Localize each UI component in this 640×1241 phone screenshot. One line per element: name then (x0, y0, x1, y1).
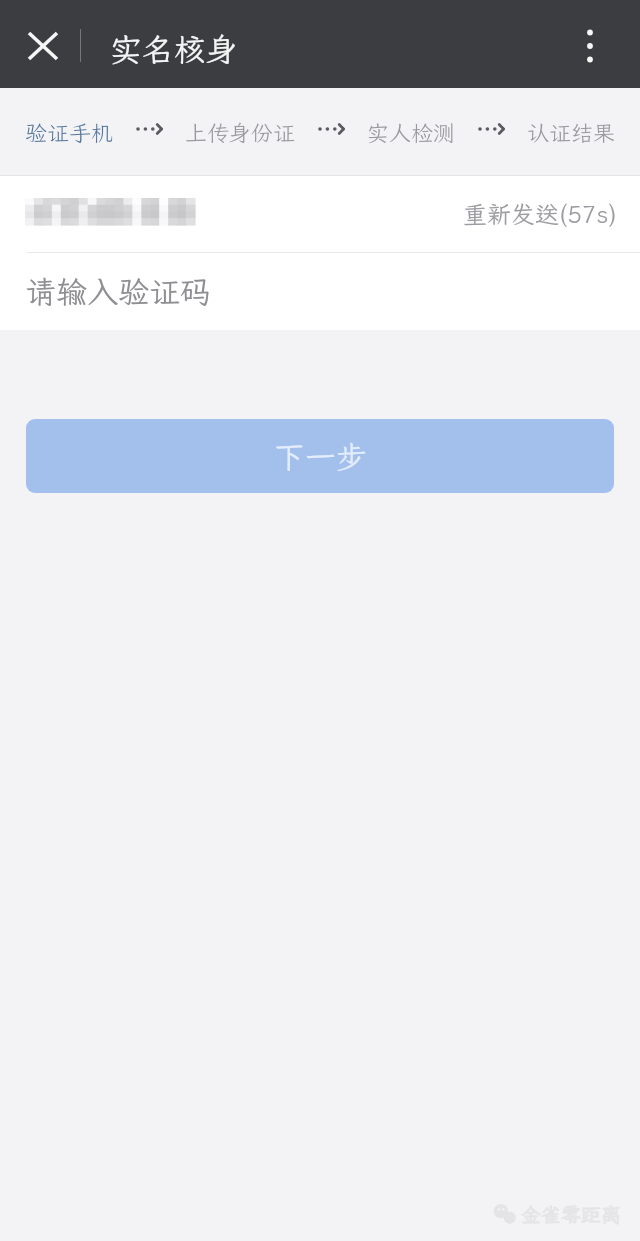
button[interactable]: 下一步 (26, 419, 614, 493)
button[interactable]: 上传身份证 (185, 118, 296, 147)
button[interactable]: 请输入验证码 (0, 253, 640, 330)
button[interactable]: Close (13, 16, 73, 76)
button[interactable]: More options (562, 18, 618, 74)
button[interactable]: 验证手机 (25, 118, 114, 147)
staticText: 金雀零距离 (521, 1201, 621, 1227)
staticText: 下一步 (274, 436, 367, 477)
button[interactable]: 重新发送(57s) (463, 198, 617, 230)
staticText: 实名核身 (110, 28, 239, 70)
staticText: 请输入验证码 (25, 271, 211, 312)
button[interactable]: 认证结果 (527, 118, 616, 147)
button[interactable]: 实人检测 (367, 118, 456, 147)
